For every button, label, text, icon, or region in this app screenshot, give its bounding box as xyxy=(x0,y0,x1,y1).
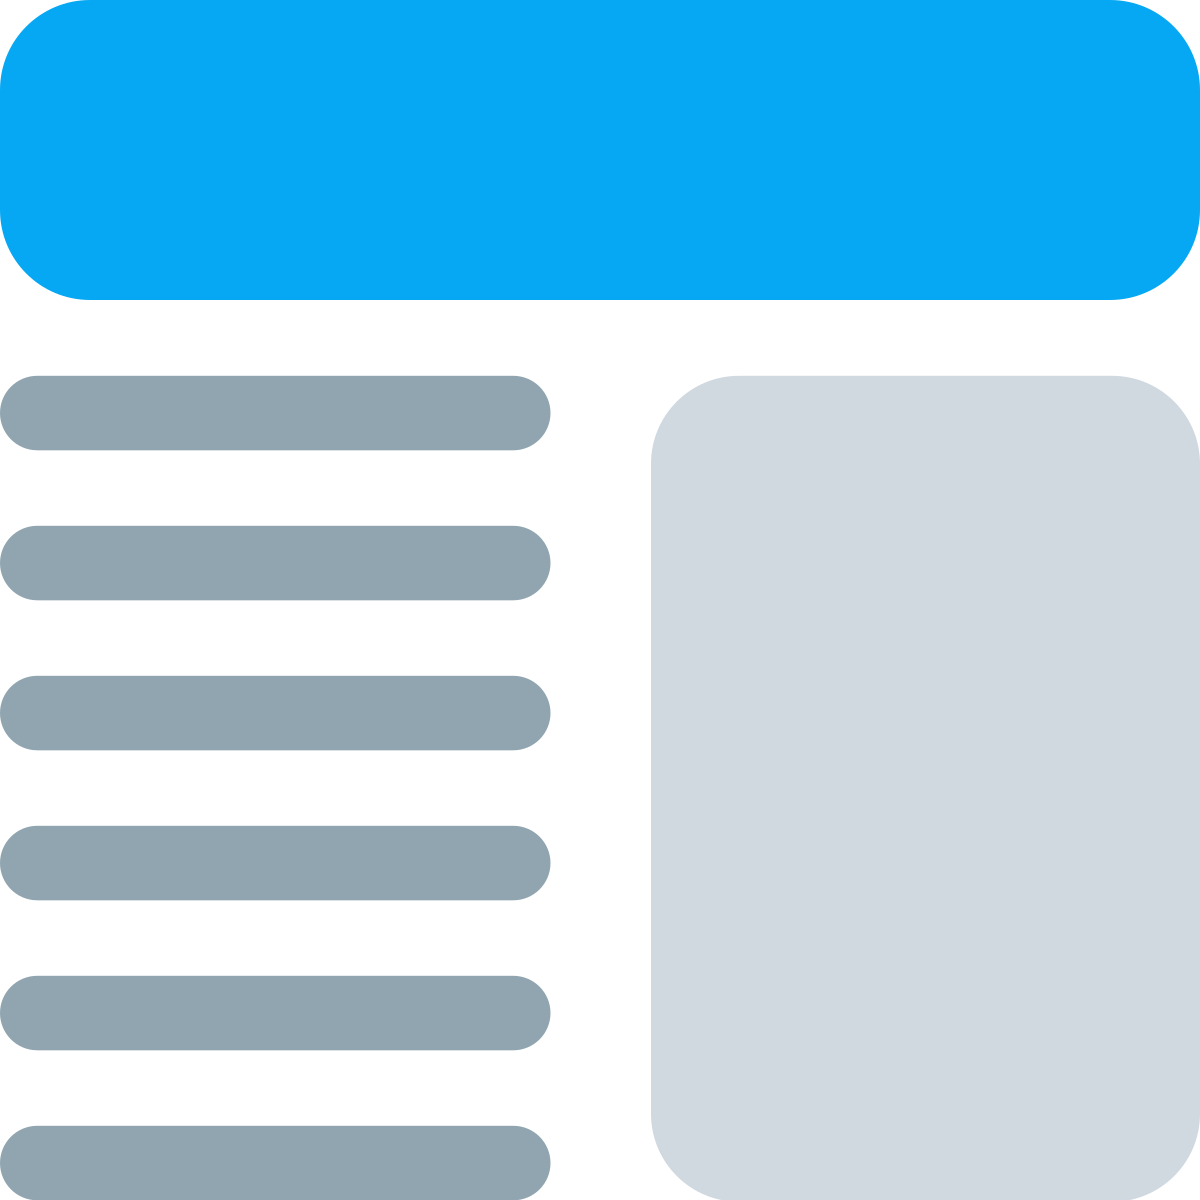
button[interactable]: Featured banner xyxy=(0,0,1200,300)
button[interactable]: Featured image xyxy=(651,376,1200,1200)
